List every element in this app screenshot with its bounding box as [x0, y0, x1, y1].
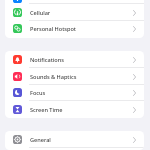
staticText: Sounds & Haptics [30, 73, 77, 81]
staticText: Cellular [30, 9, 51, 17]
staticText: Focus [30, 89, 46, 97]
button[interactable]: Cellular [5, 4, 144, 21]
staticText: Screen Time [30, 106, 63, 114]
button[interactable]: Screen Time [5, 101, 144, 118]
staticText: General [30, 136, 51, 144]
button[interactable]: Focus [5, 84, 144, 101]
button[interactable]: General [5, 131, 144, 148]
staticText: Notifications [30, 56, 64, 64]
staticText: Personal Hotspot [30, 25, 76, 33]
button[interactable]: Personal Hotspot [5, 20, 144, 37]
button[interactable]: Sounds & Haptics [5, 68, 144, 85]
button[interactable]: Notifications [5, 51, 144, 68]
